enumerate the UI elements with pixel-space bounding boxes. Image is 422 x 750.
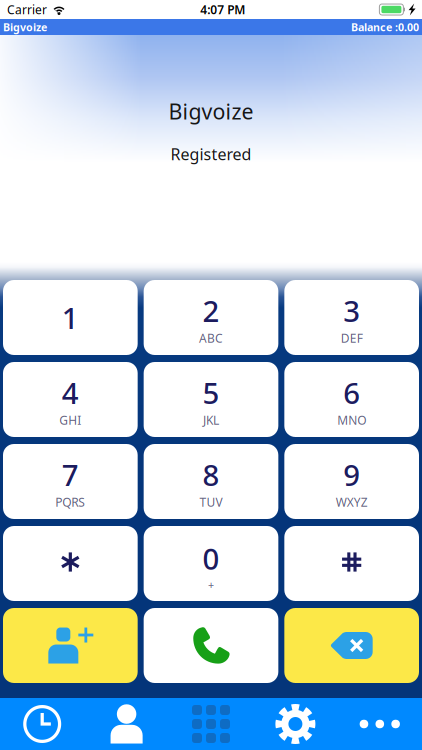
button[interactable]: Recents	[0, 698, 84, 750]
button[interactable]: 1	[3, 280, 138, 355]
staticText: PQRS	[55, 494, 85, 510]
button[interactable]: 2	[144, 280, 278, 355]
staticText: Registered	[170, 143, 251, 164]
staticText: 3	[343, 291, 360, 330]
button[interactable]: Star	[3, 526, 138, 601]
staticText: Balance :0.00	[351, 20, 419, 34]
button[interactable]: Pound	[284, 526, 419, 601]
staticText: ABC	[199, 330, 223, 346]
button[interactable]: Settings	[253, 698, 338, 750]
staticText: 8	[202, 455, 219, 494]
button[interactable]: 6	[284, 362, 419, 437]
staticText: 6	[343, 373, 360, 412]
button[interactable]: Keypad	[169, 698, 253, 750]
button[interactable]: 4	[3, 362, 138, 437]
staticText: WXYZ	[336, 494, 368, 510]
staticText: 4:07 PM	[200, 1, 245, 17]
button[interactable]: Delete	[284, 608, 419, 683]
button[interactable]: 8	[144, 444, 278, 519]
button[interactable]: 7	[3, 444, 138, 519]
staticText: Bigvoize	[168, 97, 253, 125]
staticText: 4	[62, 373, 79, 412]
staticText: GHI	[59, 412, 81, 428]
staticText: 0	[202, 539, 219, 578]
button[interactable]: Add contact	[3, 608, 138, 683]
staticText: DEF	[341, 330, 363, 346]
staticText: 7	[62, 455, 79, 494]
staticText: 5	[202, 373, 219, 412]
staticText: +	[208, 578, 214, 592]
button[interactable]: Contacts	[84, 698, 169, 750]
staticText: Carrier	[7, 1, 47, 17]
staticText: 2	[202, 291, 219, 330]
staticText: 1	[62, 298, 79, 337]
button[interactable]: Call	[144, 608, 278, 683]
button[interactable]: 3	[284, 280, 419, 355]
staticText: TUV	[199, 494, 222, 510]
staticText: MNO	[337, 412, 366, 428]
button[interactable]: 0	[144, 526, 278, 601]
button[interactable]: 5	[144, 362, 278, 437]
staticText: Bigvoize	[3, 20, 47, 34]
staticText: JKL	[203, 412, 219, 428]
staticText: 9	[343, 455, 360, 494]
button[interactable]: 9	[284, 444, 419, 519]
button[interactable]: More	[338, 698, 422, 750]
